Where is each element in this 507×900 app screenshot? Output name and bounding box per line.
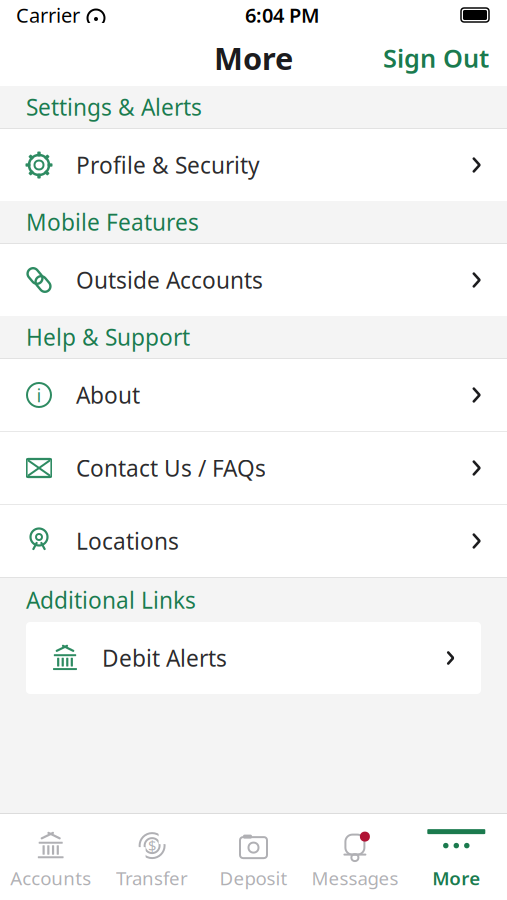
button[interactable]: Messages <box>304 824 406 890</box>
button[interactable]: Accounts <box>0 824 101 890</box>
staticText: More <box>214 38 293 78</box>
staticText: Outside Accounts <box>76 265 263 295</box>
staticText: About <box>76 380 140 410</box>
button[interactable]: $ <box>101 824 203 890</box>
staticText: Accounts <box>10 866 91 890</box>
button[interactable]: Contact Us / FAQs <box>0 432 507 504</box>
staticText: Profile & Security <box>76 150 260 180</box>
button[interactable]: i <box>0 359 507 431</box>
staticText: Help & Support <box>26 322 190 352</box>
button[interactable]: Locations <box>0 505 507 577</box>
staticText: Locations <box>76 526 179 556</box>
staticText: i <box>36 383 41 407</box>
staticText: More <box>432 866 480 890</box>
staticText: Contact Us / FAQs <box>76 453 266 483</box>
staticText: 6:04 PM <box>245 2 320 28</box>
button[interactable]: Profile & Security <box>0 129 507 201</box>
button[interactable]: Outside Accounts <box>0 244 507 316</box>
button[interactable]: Debit Alerts <box>26 622 481 694</box>
staticText: Transfer <box>116 866 188 890</box>
staticText: $ <box>148 836 156 855</box>
button[interactable]: Sign Out <box>365 33 507 83</box>
staticText: Messages <box>311 866 398 890</box>
staticText: Mobile Features <box>26 207 199 237</box>
staticText: Sign Out <box>383 41 489 75</box>
staticText: Carrier <box>16 2 80 28</box>
button[interactable]: More <box>406 824 507 890</box>
button[interactable]: Deposit <box>203 824 304 890</box>
staticText: Settings & Alerts <box>26 92 202 122</box>
staticText: Debit Alerts <box>102 643 227 673</box>
staticText: Deposit <box>219 866 287 890</box>
staticText: Additional Links <box>26 585 196 615</box>
